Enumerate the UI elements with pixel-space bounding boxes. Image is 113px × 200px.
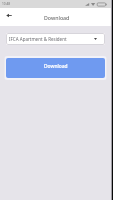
- button[interactable]: Back: [3, 9, 15, 21]
- staticText: IFCA Apartment & Resident: [9, 36, 67, 42]
- button[interactable]: Download: [6, 58, 105, 78]
- button[interactable]: IFCA Apartment & Resident: [6, 33, 105, 45]
- staticText: 10:48: [2, 2, 11, 6]
- staticText: Download: [44, 63, 68, 70]
- staticText: Download: [44, 14, 70, 21]
